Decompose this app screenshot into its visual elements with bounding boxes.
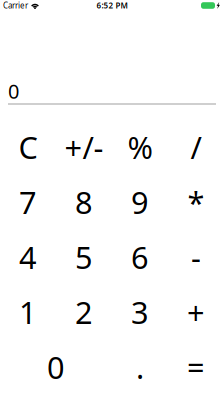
staticText: +/- (64, 127, 103, 167)
button[interactable]: 3 (112, 284, 168, 339)
button[interactable]: 2 (56, 284, 112, 339)
button[interactable]: 7 (0, 174, 56, 229)
button[interactable]: C (0, 119, 56, 174)
button[interactable]: % (112, 119, 168, 174)
button[interactable]: 5 (56, 229, 112, 284)
staticText: 2 (75, 292, 93, 332)
button[interactable]: 8 (56, 174, 112, 229)
button[interactable]: 1 (0, 284, 56, 339)
staticText: 9 (131, 182, 149, 222)
button[interactable]: +/- (56, 119, 112, 174)
staticText: 6 (131, 237, 149, 277)
staticText: 1 (19, 292, 37, 332)
button[interactable]: 9 (112, 174, 168, 229)
button[interactable]: + (168, 284, 224, 339)
staticText: 3 (131, 292, 149, 332)
staticText: 4 (19, 237, 37, 277)
button[interactable]: 0 (0, 339, 112, 394)
button[interactable]: - (168, 229, 224, 284)
staticText: / (190, 127, 201, 167)
staticText: C (18, 127, 37, 167)
button[interactable]: * (168, 174, 224, 229)
staticText: - (191, 237, 201, 277)
staticText: 5 (75, 237, 93, 277)
button[interactable]: 4 (0, 229, 56, 284)
staticText: + (187, 292, 205, 332)
button[interactable]: / (168, 119, 224, 174)
staticText: = (187, 347, 205, 387)
staticText: 6:52 PM (96, 0, 127, 11)
staticText: % (127, 127, 152, 167)
staticText: 0 (8, 78, 19, 104)
staticText: Carrier (3, 0, 28, 11)
button[interactable]: . (112, 339, 168, 394)
staticText: 7 (19, 182, 37, 222)
button[interactable]: 6 (112, 229, 168, 284)
staticText: 0 (47, 347, 65, 387)
staticText: . (136, 347, 144, 387)
button[interactable]: = (168, 339, 224, 394)
staticText: 8 (75, 182, 93, 222)
staticText: * (187, 182, 204, 222)
